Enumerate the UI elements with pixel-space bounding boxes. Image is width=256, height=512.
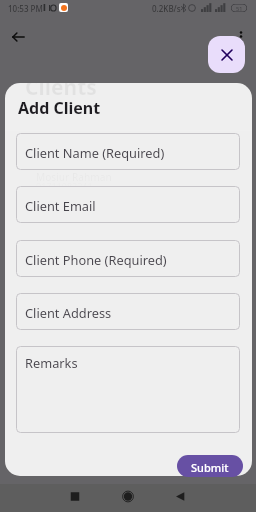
staticText: Remarks [25,354,78,371]
button[interactable]: More options [236,28,246,44]
staticText: 10:53 PM [8,3,43,14]
button[interactable]: Submit [177,455,243,477]
staticText: Client Address [25,304,112,321]
staticText: 51 [236,5,243,12]
button[interactable]: Close [208,36,245,73]
staticText: 0.2KB/s [152,3,181,14]
staticText: Add Client [18,97,101,119]
button[interactable]: Remarks [16,346,240,433]
staticText: Submit [191,460,229,475]
staticText: Client Email [25,197,96,214]
staticText: Client Phone (Required) [25,251,167,268]
button[interactable]: Client Name (Required) [16,133,240,170]
staticText: 01711082241 [36,180,93,192]
staticText: Client Name (Required) [25,144,165,161]
button[interactable]: Client Email [16,186,240,223]
button[interactable]: Recents [63,484,87,508]
button[interactable]: Back [10,27,30,47]
staticText: Clients [25,83,97,102]
button[interactable]: Client Phone (Required) [16,240,240,277]
button[interactable]: Home [116,484,140,508]
button[interactable]: Back [168,484,192,508]
button[interactable]: Client Address [16,293,240,330]
